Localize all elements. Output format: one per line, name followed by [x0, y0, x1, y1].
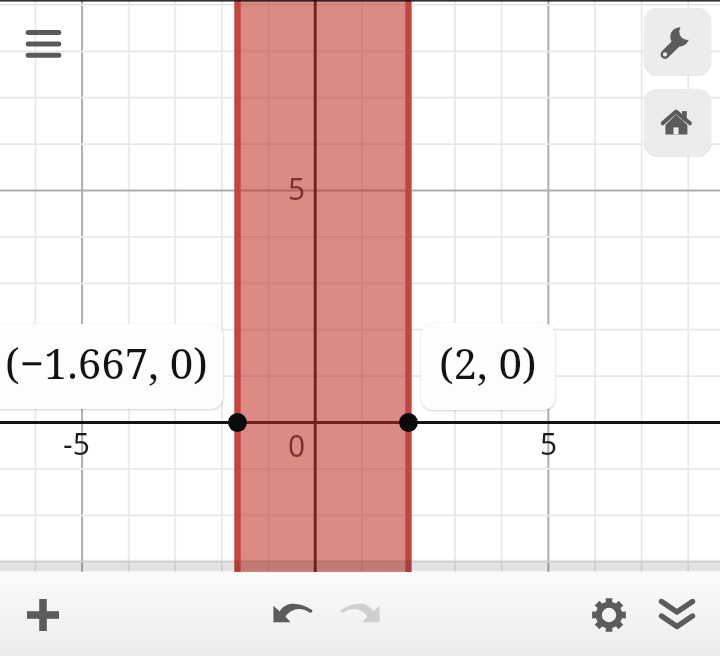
button[interactable]: Redo — [333, 587, 389, 643]
button[interactable]: Menu — [13, 13, 74, 74]
staticText: 5 — [540, 423, 558, 464]
staticText: 0 — [288, 425, 306, 466]
button[interactable]: Collapse keypad — [649, 587, 705, 643]
button[interactable]: Add expression — [15, 587, 71, 643]
staticText: -5 — [63, 423, 90, 464]
button[interactable]: Tools — [644, 8, 711, 75]
staticText: 5 — [288, 168, 306, 209]
button[interactable]: Undo — [264, 587, 320, 643]
staticText: (−1.667, 0) — [5, 334, 208, 391]
staticText: (2, 0) — [439, 334, 537, 391]
button[interactable]: Settings — [581, 587, 637, 643]
button[interactable]: Home — [644, 89, 711, 156]
